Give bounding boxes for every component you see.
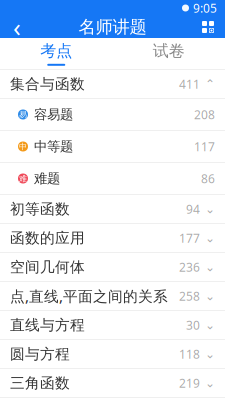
button[interactable]: Search xyxy=(191,16,225,38)
staticText: 411 xyxy=(179,76,200,92)
staticText: 难 xyxy=(19,174,27,183)
staticText: 177 xyxy=(179,230,200,246)
staticText: 中 xyxy=(19,142,27,151)
staticText: 118 xyxy=(179,346,200,362)
staticText: 函数的应用 xyxy=(10,229,85,247)
button[interactable]: 圆与方程 xyxy=(0,340,225,368)
staticText: 圆与方程 xyxy=(10,345,70,363)
staticText: 易 xyxy=(19,110,27,119)
staticText: ⌄ xyxy=(205,347,215,361)
button[interactable]: 初等函数 xyxy=(0,195,225,223)
staticText: 考点 xyxy=(40,41,72,61)
staticText: 直线与方程 xyxy=(10,316,85,334)
button[interactable]: Back xyxy=(0,16,34,38)
button[interactable]: 三角函数 xyxy=(0,369,225,397)
staticText: 难题 xyxy=(34,170,60,187)
staticText: 9:05 xyxy=(193,0,217,16)
button[interactable]: 考点 xyxy=(0,38,112,69)
staticText: ⌄ xyxy=(205,231,215,245)
staticText: 208 xyxy=(194,106,215,122)
staticText: ⌄ xyxy=(205,202,215,216)
staticText: 219 xyxy=(179,375,200,391)
staticText: ⌄ xyxy=(205,260,215,274)
button[interactable]: 难 xyxy=(0,163,225,194)
button[interactable]: 直线与方程 xyxy=(0,311,225,339)
staticText: ⌄ xyxy=(205,376,215,390)
staticText: 点,直线,平面之间的关系 xyxy=(10,286,168,306)
staticText: 236 xyxy=(179,259,200,275)
staticText: 试卷 xyxy=(153,41,185,61)
button[interactable]: 试卷 xyxy=(112,38,225,69)
staticText: 集合与函数 xyxy=(10,75,85,93)
staticText: 258 xyxy=(179,288,200,304)
staticText: 中等题 xyxy=(34,138,73,155)
button[interactable]: 空间几何体 xyxy=(0,253,225,281)
staticText: 86 xyxy=(201,170,215,186)
staticText: 名师讲题 xyxy=(78,16,146,38)
staticText: ‹ xyxy=(13,10,21,44)
button[interactable]: 点,直线,平面之间的关系 xyxy=(0,282,225,310)
staticText: 30 xyxy=(186,317,200,333)
staticText: 117 xyxy=(194,138,215,154)
staticText: ⌄ xyxy=(205,289,215,303)
staticText: 初等函数 xyxy=(10,200,70,218)
staticText: ⌄ xyxy=(205,318,215,332)
button[interactable]: 函数的应用 xyxy=(0,224,225,252)
staticText: ⌃ xyxy=(205,77,215,91)
button[interactable]: 易 xyxy=(0,99,225,130)
staticText: 94 xyxy=(186,201,200,217)
button[interactable]: 中 xyxy=(0,131,225,162)
button[interactable]: 集合与函数 xyxy=(0,70,225,98)
staticText: 空间几何体 xyxy=(10,258,85,276)
staticText: 三角函数 xyxy=(10,374,70,392)
staticText: 容易题 xyxy=(34,106,73,123)
